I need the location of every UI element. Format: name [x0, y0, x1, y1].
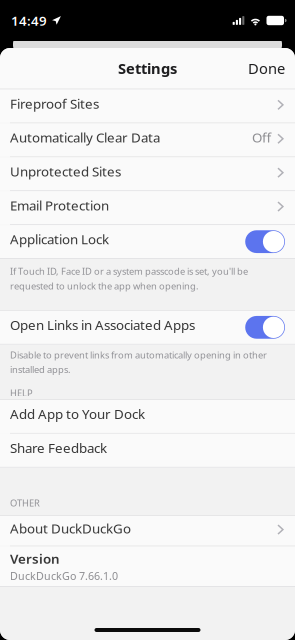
staticText: OTHER [10, 497, 40, 509]
staticText: Add App to Your Dock [10, 405, 145, 423]
staticText: Done [248, 59, 285, 78]
button[interactable]: Done [238, 48, 295, 89]
button[interactable]: Fireproof Sites [0, 89, 295, 123]
staticText: Version [10, 550, 60, 567]
staticText: Automatically Clear Data [10, 129, 160, 146]
staticText: If Touch ID, Face ID or a system passcod… [10, 265, 248, 292]
staticText: Email Protection [10, 196, 109, 214]
staticText: 14:49 [11, 12, 47, 29]
staticText: Fireproof Sites [10, 95, 99, 112]
button[interactable]: Automatically Clear Data [0, 123, 295, 156]
button[interactable]: About DuckDuckGo [0, 516, 295, 546]
staticText: Share Feedback [10, 439, 107, 457]
staticText: About DuckDuckGo [10, 519, 131, 537]
button[interactable]: Share Feedback [0, 434, 295, 467]
staticText: Settings [118, 59, 177, 78]
button[interactable]: Version [0, 546, 295, 586]
staticText: HELP [10, 387, 33, 399]
button[interactable]: Add App to Your Dock [0, 400, 295, 433]
button[interactable]: Email Protection [0, 191, 295, 224]
staticText: Disable to prevent links from automatica… [10, 349, 267, 376]
button[interactable]: Application Lock [0, 225, 295, 258]
staticText: DuckDuckGo 7.66.1.0 [10, 569, 118, 583]
button[interactable]: Unprotected Sites [0, 157, 295, 190]
button[interactable]: Open Links in Associated Apps [0, 311, 295, 344]
staticText: Off [252, 129, 271, 146]
staticText: Application Lock [10, 230, 109, 248]
staticText: Unprotected Sites [10, 162, 121, 180]
staticText: Open Links in Associated Apps [10, 316, 195, 334]
